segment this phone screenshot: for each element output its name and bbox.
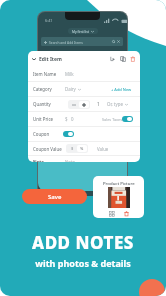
staticText: % (80, 146, 84, 151)
staticText: Note (33, 159, 44, 162)
staticText: Milk (65, 71, 74, 77)
staticText: Dairy (65, 86, 76, 92)
staticText: My first list (72, 29, 89, 33)
button[interactable]: Delete picture (122, 209, 130, 217)
button[interactable] (122, 116, 133, 122)
staticText: Or, type (107, 101, 123, 107)
button[interactable]: Increase (79, 101, 89, 108)
staticText: with photos & details (35, 257, 131, 269)
button[interactable]: Gallery (107, 209, 115, 217)
button[interactable]: Decrease (69, 101, 79, 108)
staticText: Coupon (33, 131, 50, 137)
button[interactable]: Search and Add Items (41, 37, 123, 46)
button[interactable]: Item Name (28, 67, 140, 81)
button[interactable]: Coupon Value (28, 142, 140, 155)
staticText: 6:41 (45, 18, 53, 23)
button[interactable]: Coupon (28, 127, 140, 141)
button[interactable]: % (77, 145, 87, 152)
staticText: + Add New (111, 87, 132, 92)
staticText: $ (71, 146, 74, 151)
staticText: Product Picture (103, 180, 135, 186)
button[interactable]: My first list (72, 29, 94, 33)
button[interactable]: Category (28, 82, 140, 96)
button[interactable]: $ (67, 145, 77, 152)
button[interactable]: Delete (129, 55, 137, 63)
staticText: $ (65, 116, 68, 122)
staticText: ADD NOTES (32, 231, 134, 254)
button[interactable]: Share (109, 55, 117, 63)
staticText: Category (33, 86, 52, 92)
staticText: 0 (71, 116, 74, 122)
staticText: Item Name (33, 71, 57, 77)
button[interactable] (63, 131, 74, 137)
staticText: 1 (97, 101, 100, 107)
staticText: Search and Add Items (49, 40, 83, 44)
staticText: Unit Price (33, 116, 53, 122)
button[interactable]: Copy (119, 55, 127, 63)
staticText: Coupon Value (33, 146, 62, 152)
staticText: Note (65, 159, 76, 162)
staticText: Sales Taxes (102, 117, 122, 122)
button[interactable]: Note (28, 156, 140, 162)
staticText: Value (97, 146, 109, 152)
button[interactable]: Save (22, 189, 87, 204)
button[interactable]: Quantity (28, 97, 140, 111)
staticText: Edit Item (39, 56, 62, 63)
staticText: Quantity (33, 101, 51, 107)
staticText: Save (48, 193, 62, 201)
button[interactable]: Unit Price (28, 112, 140, 126)
